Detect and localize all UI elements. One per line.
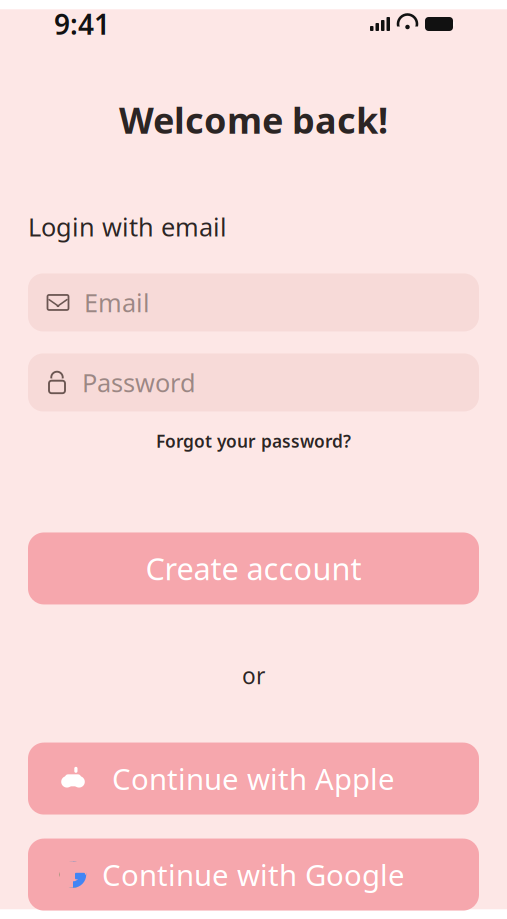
staticText: Forgot your password? bbox=[156, 429, 351, 452]
staticText: Continue with Apple bbox=[112, 759, 395, 798]
staticText: Continue with Google bbox=[102, 855, 405, 894]
button[interactable]: Continue with Apple bbox=[28, 743, 479, 815]
button[interactable]: Continue with Google bbox=[28, 839, 479, 911]
staticText: Password bbox=[82, 366, 196, 399]
staticText: Email bbox=[84, 286, 150, 319]
button[interactable]: Forgot your password? bbox=[148, 425, 359, 456]
staticText: Create account bbox=[145, 548, 361, 589]
button[interactable]: Create account bbox=[28, 532, 479, 604]
staticText: 9:41 bbox=[54, 5, 110, 43]
staticText: Login with email bbox=[28, 210, 227, 243]
staticText: Welcome back! bbox=[119, 96, 388, 144]
staticText: or bbox=[242, 660, 265, 691]
